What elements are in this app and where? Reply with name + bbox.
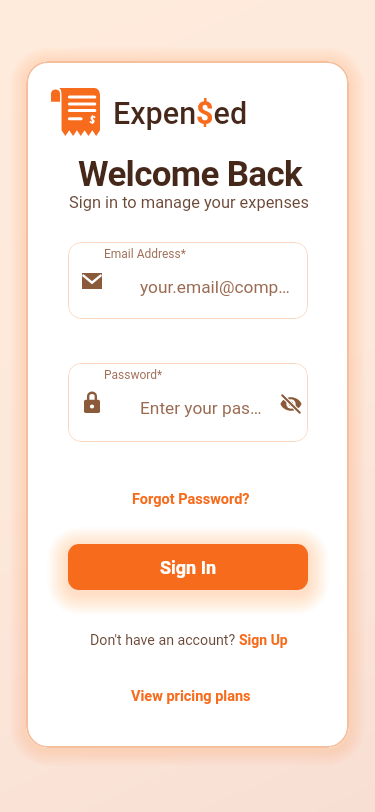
button[interactable]: Sign Up bbox=[239, 632, 288, 648]
button[interactable]: Password* bbox=[68, 363, 308, 442]
button[interactable]: Forgot Password? bbox=[122, 484, 260, 515]
button[interactable]: View pricing plans bbox=[121, 681, 261, 712]
staticText: View pricing plans bbox=[131, 688, 251, 705]
staticText: Password* bbox=[104, 368, 163, 382]
staticText: Forgot Password? bbox=[132, 491, 250, 508]
staticText: Don't have an account? bbox=[90, 632, 239, 649]
staticText: Enter your pas… bbox=[140, 398, 262, 418]
staticText: Expen$ed bbox=[113, 96, 248, 132]
staticText: your.email@comp… bbox=[140, 277, 290, 297]
staticText: Sign Up bbox=[239, 632, 288, 648]
button[interactable]: Show password bbox=[280, 395, 302, 413]
button[interactable]: Sign In bbox=[68, 544, 308, 590]
staticText: Sign in to manage your expenses bbox=[69, 193, 309, 212]
button[interactable]: Email Address* bbox=[68, 242, 308, 319]
staticText: Sign In bbox=[160, 557, 217, 578]
staticText: Email Address* bbox=[104, 247, 186, 261]
staticText: Welcome Back bbox=[78, 154, 302, 195]
